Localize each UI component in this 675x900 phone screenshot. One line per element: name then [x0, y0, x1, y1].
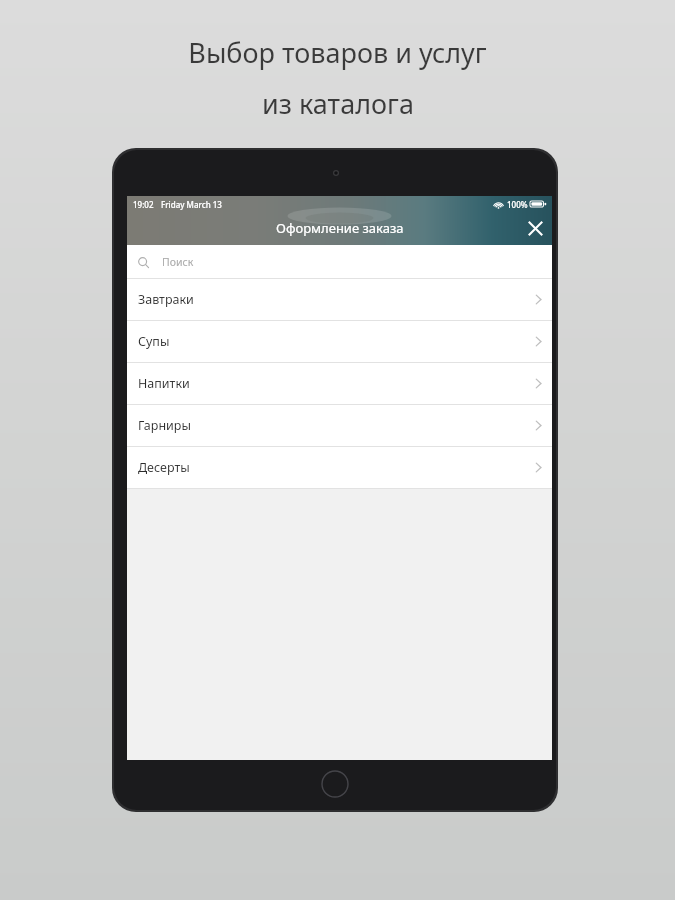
button[interactable]: Гарниры [127, 405, 552, 446]
staticText: Выбор товаров и услуг [188, 34, 487, 71]
staticText: Супы [138, 333, 170, 350]
staticText: 19:02 [133, 199, 154, 210]
button[interactable]: Завтраки [127, 279, 552, 320]
staticText: из каталога [262, 85, 414, 122]
staticText: Оформление заказа [276, 219, 404, 237]
button[interactable]: Закрыть [518, 211, 552, 245]
button[interactable]: Поиск [127, 245, 552, 278]
staticText: Friday March 13 [161, 199, 222, 210]
staticText: Гарниры [138, 417, 191, 434]
staticText: Поиск [162, 255, 194, 269]
button[interactable]: Напитки [127, 363, 552, 404]
staticText: Напитки [138, 375, 190, 392]
staticText: 100% [507, 199, 528, 210]
button[interactable]: Супы [127, 321, 552, 362]
button[interactable]: Десерты [127, 447, 552, 488]
staticText: Завтраки [138, 291, 194, 308]
staticText: Десерты [138, 459, 190, 476]
